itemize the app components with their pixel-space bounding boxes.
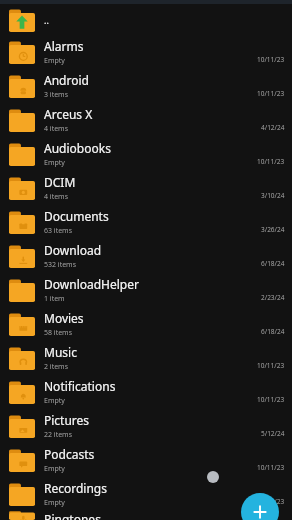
button[interactable]: Notifications [0,375,292,409]
staticText: 63 items [44,226,73,236]
staticText: Music [44,344,77,360]
staticText: Empty [44,464,65,474]
staticText: 4 items [44,124,69,134]
staticText: Pictures [44,412,90,428]
button[interactable]: Podcasts [0,443,292,477]
staticText: 3 items [44,90,69,100]
staticText: 10/11/23 [257,395,285,404]
staticText: 2 items [44,362,69,372]
staticText: Podcasts [44,446,95,462]
staticText: 6/18/24 [261,259,285,268]
staticText: 22 items [44,430,73,440]
button[interactable]: .. [0,5,292,35]
staticText: 10/11/23 [257,55,285,64]
staticText: Empty [44,498,65,508]
staticText: DownloadHelper [44,276,139,292]
staticText: Ringtones [44,511,101,520]
staticText: Movies [44,310,84,326]
staticText: 10/11/23 [257,89,285,98]
staticText: 5/12/24 [261,429,285,438]
staticText: Recordings [44,480,107,496]
button[interactable]: Download [0,239,292,273]
staticText: Empty [44,396,65,406]
staticText: Documents [44,208,109,224]
button[interactable]: DownloadHelper [0,273,292,307]
button[interactable]: Android [0,69,292,103]
staticText: 4 items [44,192,69,202]
staticText: 532 items [44,260,77,270]
staticText: 1 item [44,294,65,304]
staticText: Android [44,72,89,88]
button[interactable]: Ringtones [0,511,292,520]
staticText: 4/12/24 [261,123,285,132]
button[interactable]: Recordings [0,477,292,511]
staticText: DCIM [44,174,76,190]
button[interactable]: Music [0,341,292,375]
staticText: 10/11/23 [257,463,285,472]
staticText: Download [44,242,102,258]
button[interactable]: Alarms [0,35,292,69]
staticText: 10/11/23 [257,497,285,506]
staticText: 10/11/23 [257,361,285,370]
staticText: Empty [44,56,65,66]
staticText: Notifications [44,378,116,394]
staticText: 6/18/24 [261,327,285,336]
staticText: Alarms [44,38,84,54]
staticText: Empty [44,158,65,168]
staticText: 58 items [44,328,73,338]
staticText: Audiobooks [44,140,111,156]
button[interactable]: Pictures [0,409,292,443]
button[interactable]: DCIM [0,171,292,205]
staticText: Arceus X [44,106,93,122]
staticText: 10/11/23 [257,157,285,166]
button[interactable]: Add new [241,493,279,520]
staticText: 3/10/24 [261,191,285,200]
staticText: .. [44,14,49,26]
button[interactable]: Documents [0,205,292,239]
button[interactable]: Arceus X [0,103,292,137]
button[interactable]: Movies [0,307,292,341]
staticText: 3/26/24 [261,225,285,234]
button[interactable]: Audiobooks [0,137,292,171]
staticText: 2/23/24 [261,293,285,302]
